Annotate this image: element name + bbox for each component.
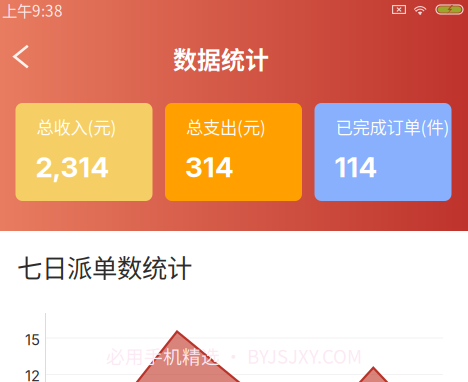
button[interactable]: 已完成订单(件) — [314, 103, 451, 201]
staticText: 上午9:38 — [2, 0, 63, 21]
staticText: 114 — [334, 150, 377, 184]
staticText: 七日派单数统计 — [17, 248, 192, 285]
staticText: 15 — [25, 331, 40, 349]
staticText: 已完成订单(件) — [335, 114, 449, 139]
staticText: 数据统计 — [173, 41, 269, 76]
staticText: 314 — [185, 150, 234, 184]
staticText: 12 — [25, 367, 40, 382]
button[interactable]: 总支出(元) — [165, 103, 302, 201]
staticText: 总支出(元) — [186, 114, 266, 139]
staticText: 2,314 — [35, 150, 109, 184]
button[interactable]: Back — [0, 33, 45, 79]
button[interactable]: 总收入(元) — [15, 103, 152, 201]
staticText: 必用手机精选 · BYJSJXY.COM — [106, 342, 362, 369]
staticText: 总收入(元) — [36, 114, 116, 139]
